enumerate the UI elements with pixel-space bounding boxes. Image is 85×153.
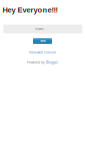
button[interactable]: Home: [33, 38, 52, 44]
button[interactable]: Powered by: [27, 61, 58, 64]
staticText: Home: [39, 39, 45, 42]
button[interactable]: View web version: [29, 51, 56, 54]
staticText: Hey Everyone!!!: [2, 6, 57, 14]
staticText: View web version: [29, 51, 56, 54]
staticText: Powered by: [27, 61, 45, 64]
staticText: No posts.: [34, 27, 44, 30]
staticText: Blogger: [46, 61, 58, 64]
